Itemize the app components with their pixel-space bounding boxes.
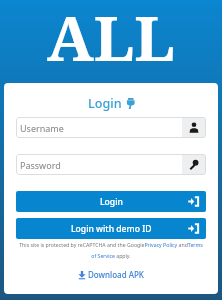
staticText: Username	[20, 122, 182, 134]
staticText: Download APK	[88, 269, 144, 280]
staticText: Login with demo ID	[71, 223, 152, 235]
staticText: This site is protected by reCAPTCHA and …	[4, 241, 218, 259]
button[interactable]: Login with demo ID	[16, 218, 206, 239]
button[interactable]: Download APK	[4, 269, 218, 280]
other: Sign in	[188, 197, 199, 206]
button[interactable]: Username	[16, 117, 206, 138]
button[interactable]: Password	[16, 154, 206, 175]
staticText: ALL	[47, 0, 175, 78]
staticText: Login	[100, 196, 123, 208]
other: Sign in	[188, 224, 199, 233]
staticText: Login	[88, 95, 122, 112]
button[interactable]: Login	[16, 191, 206, 212]
staticText: Password	[20, 159, 182, 171]
